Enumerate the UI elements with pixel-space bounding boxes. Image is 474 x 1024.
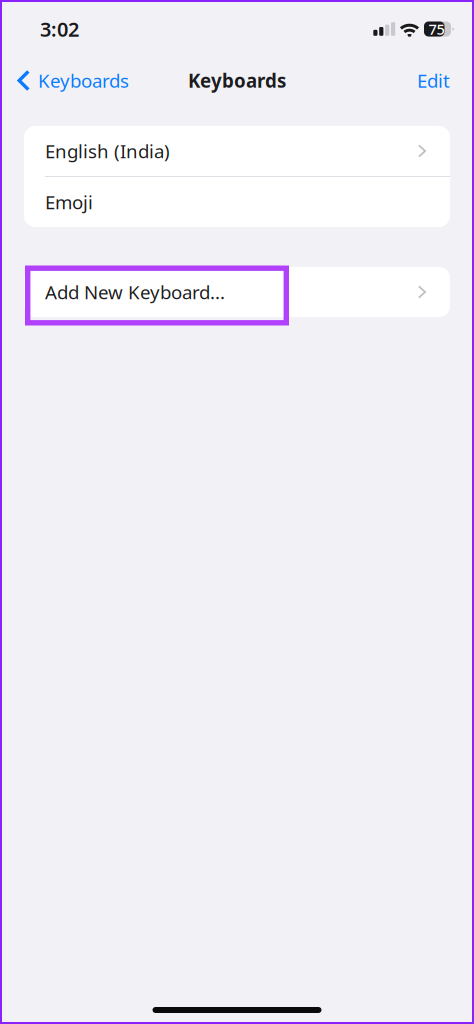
button[interactable]: Add New Keyboard... xyxy=(24,267,450,317)
button[interactable]: English (India) xyxy=(24,126,450,176)
staticText: 75 xyxy=(428,19,444,39)
staticText: Add New Keyboard... xyxy=(45,280,225,304)
staticText: Keyboards xyxy=(188,68,286,93)
staticText: English (India) xyxy=(45,139,170,163)
staticText: 3:02 xyxy=(40,16,79,42)
button[interactable]: Edit xyxy=(405,58,474,103)
staticText: Edit xyxy=(417,68,450,93)
button[interactable]: Keyboards xyxy=(0,58,137,103)
button[interactable]: Emoji xyxy=(24,177,450,227)
staticText: Emoji xyxy=(45,190,93,214)
staticText: Keyboards xyxy=(38,68,129,93)
